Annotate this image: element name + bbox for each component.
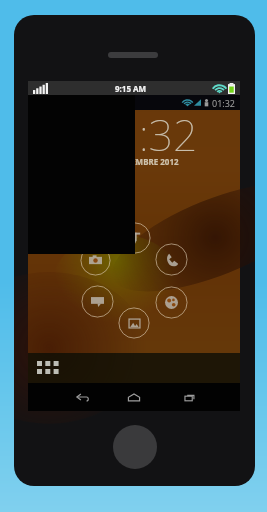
staticText: 01:32	[90, 105, 198, 164]
button[interactable]: Camera	[80, 245, 111, 276]
button[interactable]: Home button	[113, 425, 157, 469]
staticText: 01:32	[212, 97, 236, 109]
button[interactable]: Music	[119, 222, 151, 254]
staticText: 4 DECEMBRE 2012	[109, 156, 179, 167]
button[interactable]: Back	[69, 383, 95, 411]
button[interactable]: Phone	[155, 243, 188, 276]
staticText: 9:15 AM	[115, 83, 147, 94]
button[interactable]: Gallery	[118, 307, 150, 339]
button[interactable]: Recent apps	[177, 383, 203, 411]
button[interactable]: Messages	[81, 285, 114, 318]
button[interactable]: All apps	[34, 357, 58, 379]
button[interactable]: Browser	[155, 286, 188, 319]
button[interactable]: Home	[121, 383, 147, 411]
